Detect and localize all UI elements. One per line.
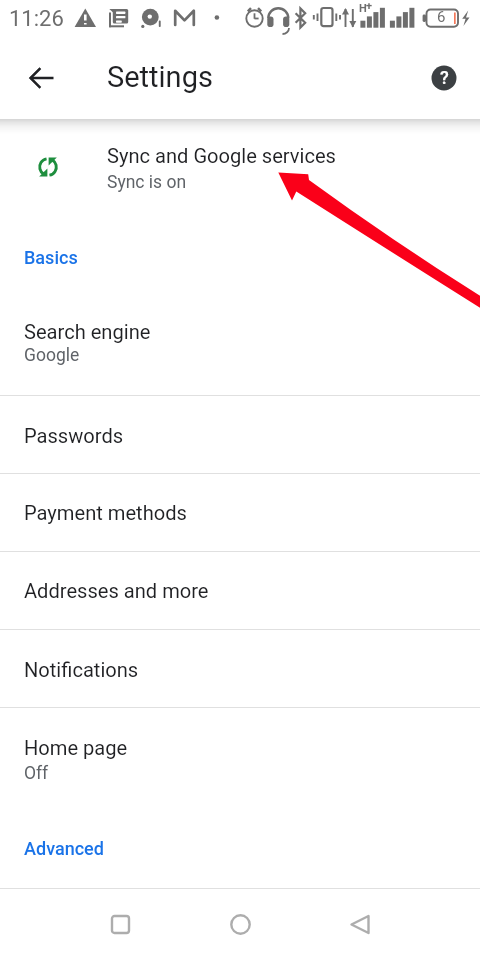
staticText: Home page — [24, 736, 128, 760]
staticText: + — [366, 0, 373, 13]
staticText: Settings — [107, 60, 213, 94]
staticText: Google — [24, 345, 80, 366]
button[interactable]: Back — [23, 59, 61, 97]
button[interactable] — [0, 291, 480, 395]
staticText: H — [359, 2, 367, 15]
staticText: Passwords — [24, 424, 124, 448]
staticText: Sync and Google services — [107, 144, 336, 168]
button[interactable]: Recent apps — [80, 889, 160, 960]
button[interactable] — [0, 629, 480, 707]
staticText: 6 — [437, 8, 446, 26]
staticText: Addresses and more — [24, 579, 209, 603]
button[interactable] — [0, 707, 480, 811]
staticText: Payment methods — [24, 501, 187, 525]
staticText: Off — [24, 763, 49, 784]
button[interactable] — [0, 473, 480, 551]
staticText: Basics — [24, 247, 78, 268]
staticText: 11:26 — [9, 6, 64, 32]
button[interactable] — [0, 232, 480, 276]
staticText: Sync is on — [107, 172, 187, 193]
staticText: Notifications — [24, 658, 139, 682]
staticText: ? — [440, 67, 449, 88]
button[interactable]: Home — [200, 889, 280, 960]
button[interactable] — [0, 119, 480, 223]
button[interactable] — [0, 395, 480, 473]
button[interactable]: Help — [425, 59, 463, 97]
staticText: Advanced — [24, 838, 104, 859]
button[interactable] — [0, 551, 480, 629]
button[interactable] — [0, 822, 480, 866]
button[interactable]: Back — [320, 889, 400, 960]
staticText: Search engine — [24, 320, 151, 344]
